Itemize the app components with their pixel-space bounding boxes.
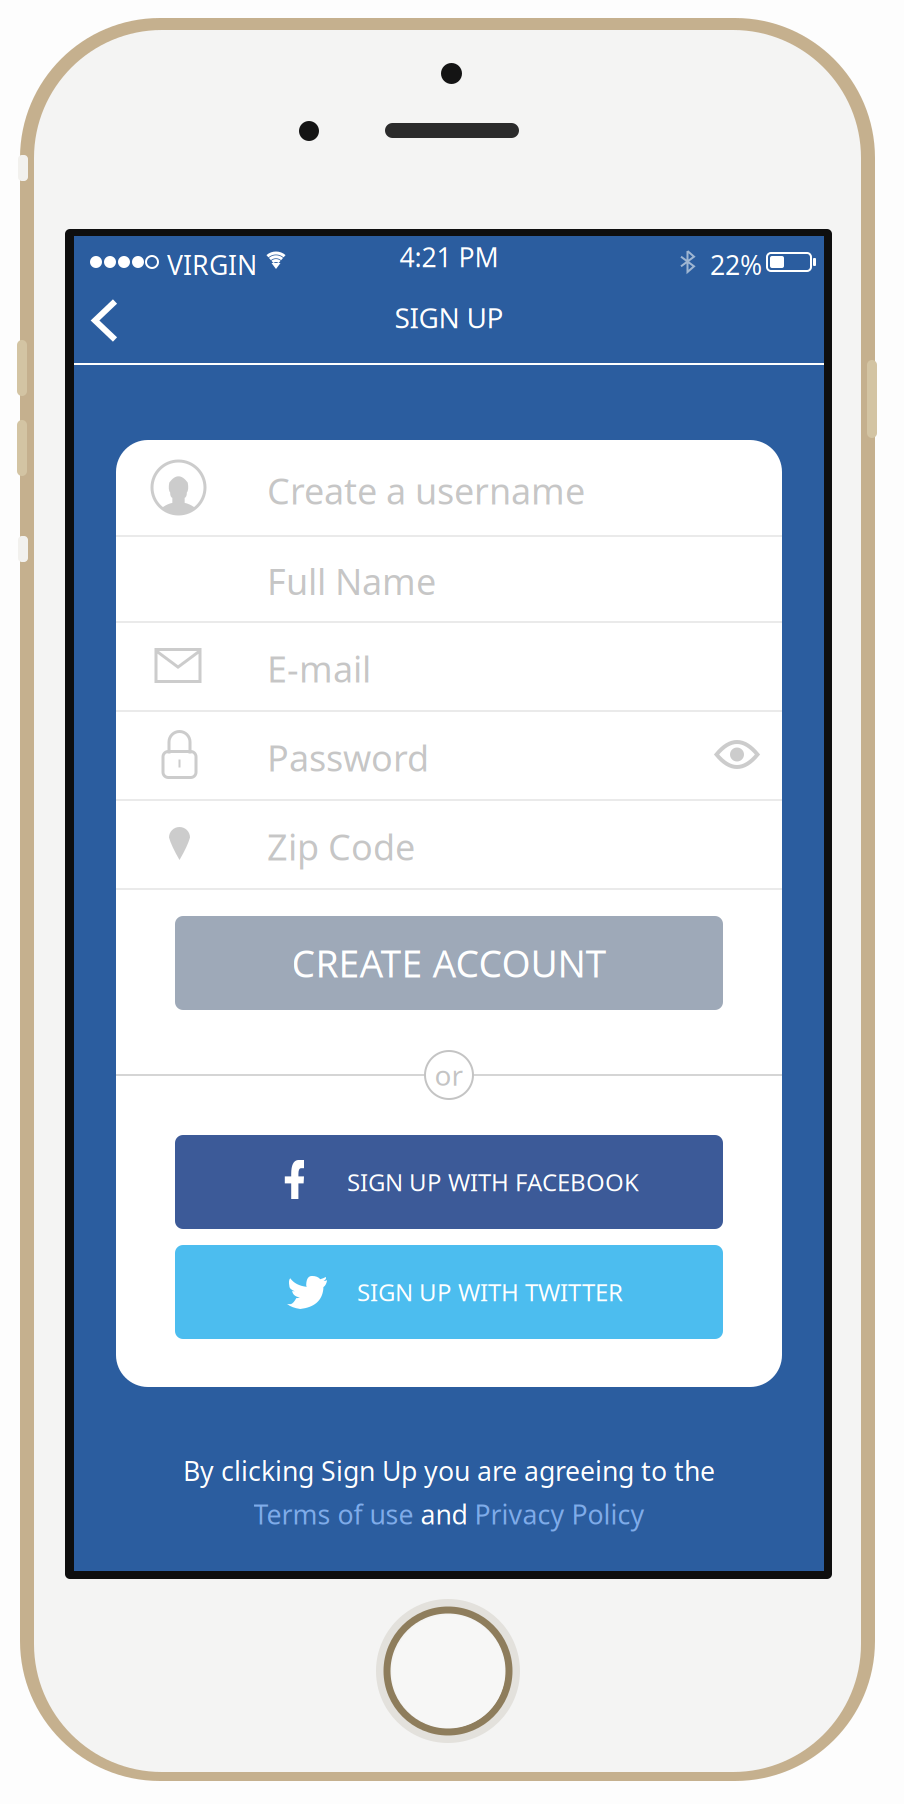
staticText: VIRGIN	[167, 247, 257, 282]
staticText: Full Name	[267, 557, 436, 605]
staticText: By clicking Sign Up you are agreeing to …	[183, 1453, 715, 1488]
button[interactable]: Show password	[697, 723, 777, 785]
button[interactable]: Terms of use	[253, 1496, 413, 1532]
button[interactable]: Full Name	[116, 535, 782, 621]
staticText: and	[413, 1496, 474, 1532]
staticText: Create a username	[267, 467, 585, 514]
button[interactable]: SIGN UP WITH FACEBOOK	[175, 1135, 723, 1229]
staticText: SIGN UP WITH TWITTER	[357, 1276, 623, 1308]
button[interactable]: SIGN UP WITH TWITTER	[175, 1245, 723, 1339]
button[interactable]: Zip Code	[116, 799, 782, 888]
button[interactable]: Back	[74, 284, 136, 365]
button[interactable]: Privacy Policy	[474, 1496, 644, 1532]
staticText: or	[434, 1056, 463, 1094]
button[interactable]: Password	[116, 710, 782, 799]
staticText: SIGN UP WITH FACEBOOK	[347, 1166, 639, 1198]
button[interactable]: E-mail	[116, 621, 782, 710]
staticText: 22%	[710, 247, 762, 282]
button[interactable]: Create a username	[116, 440, 782, 535]
staticText: Privacy Policy	[474, 1496, 644, 1532]
staticText: 4:21 PM	[399, 239, 498, 275]
staticText: SIGN UP	[394, 299, 503, 336]
staticText: E-mail	[267, 645, 371, 692]
button[interactable]: CREATE ACCOUNT	[175, 916, 723, 1010]
staticText: Zip Code	[267, 823, 415, 870]
staticText: CREATE ACCOUNT	[291, 938, 606, 988]
staticText: Password	[267, 734, 429, 781]
staticText: Terms of use	[253, 1496, 413, 1532]
